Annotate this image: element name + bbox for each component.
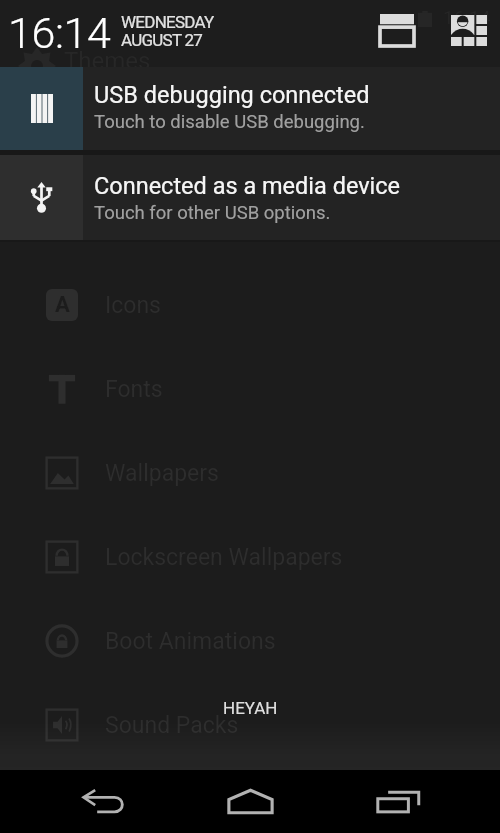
button[interactable]: USB debugging connected: [0, 67, 500, 150]
staticText: Icons: [105, 292, 161, 319]
staticText: USB debugging connected: [94, 81, 370, 109]
button[interactable]: Switch user: [441, 7, 497, 53]
staticText: Themes: [64, 47, 151, 75]
staticText: 16:14: [8, 8, 111, 58]
button[interactable]: Connected as a media device: [0, 155, 500, 240]
staticText: Lockscreen Wallpapers: [105, 544, 343, 571]
button[interactable]: Back: [60, 770, 148, 833]
staticText: Fonts: [105, 376, 163, 403]
staticText: Wallpapers: [105, 460, 219, 487]
staticText: Touch for other USB options.: [94, 202, 331, 224]
staticText: A: [55, 292, 70, 318]
button[interactable]: Sound Packs: [0, 683, 500, 767]
staticText: 16:14: [443, 6, 491, 28]
staticText: Touch to disable USB debugging.: [94, 111, 365, 133]
button[interactable]: Home: [206, 770, 294, 833]
button[interactable]: Recent apps: [354, 770, 442, 833]
staticText: HEYAH: [223, 698, 278, 718]
staticText: Boot Animations: [105, 628, 276, 655]
staticText: Sound Packs: [105, 712, 239, 739]
staticText: Connected as a media device: [94, 172, 401, 200]
staticText: WEDNESDAY AUGUST 27: [121, 12, 214, 50]
button[interactable]: Quick settings: [369, 7, 425, 53]
